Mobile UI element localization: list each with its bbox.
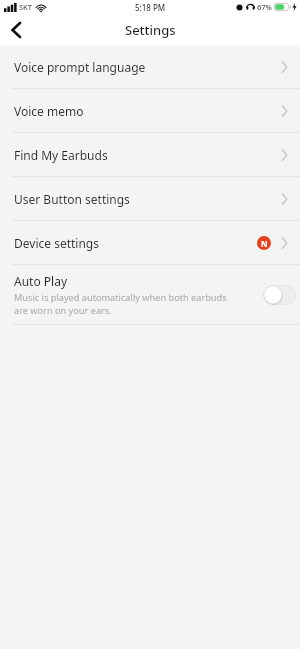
staticText: Settings — [125, 21, 176, 39]
staticText: are worn on your ears. — [14, 304, 112, 317]
staticText: SKT — [19, 2, 33, 12]
button[interactable]: Find My Earbuds — [0, 133, 300, 176]
button[interactable]: Voice memo — [0, 89, 300, 132]
button[interactable]: Device settings — [0, 221, 300, 264]
button[interactable]: Auto Play toggle — [263, 285, 296, 305]
staticText: Device settings — [14, 235, 99, 251]
button[interactable]: Voice prompt language — [0, 45, 300, 88]
staticText: Find My Earbuds — [14, 147, 108, 163]
staticText: 5:18 PM — [135, 2, 166, 13]
button[interactable]: Auto Play — [0, 265, 300, 324]
button[interactable]: Back — [0, 14, 32, 45]
button[interactable]: User Button settings — [0, 177, 300, 220]
staticText: Auto Play — [14, 273, 68, 289]
staticText: Music is played automatically when both … — [14, 291, 227, 304]
staticText: 67% — [257, 2, 272, 12]
staticText: User Button settings — [14, 191, 130, 207]
staticText: Voice memo — [14, 103, 84, 119]
staticText: Voice prompt language — [14, 59, 146, 75]
staticText: N — [261, 238, 268, 249]
